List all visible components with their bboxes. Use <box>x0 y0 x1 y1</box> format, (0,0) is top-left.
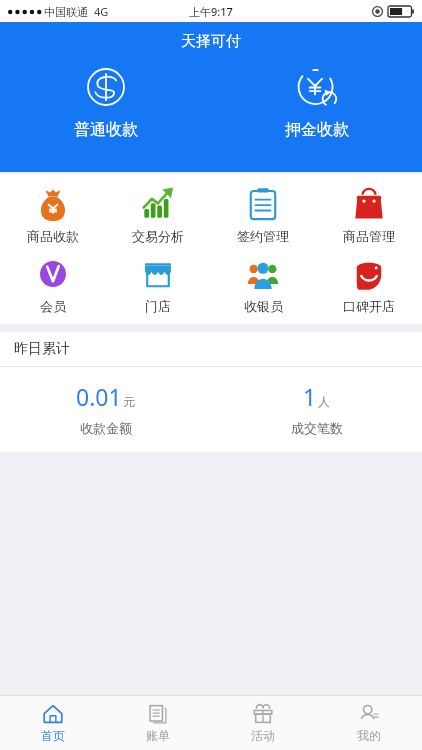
button[interactable]: 收银员 <box>210 250 316 320</box>
staticText: 签约管理 <box>237 228 289 244</box>
staticText: 天择可付 <box>181 32 241 51</box>
staticText: 收款金额 <box>80 420 132 436</box>
button[interactable]: 交易分析 <box>105 180 210 250</box>
staticText: 普通收款 <box>74 120 138 140</box>
staticText: 中国联通 <box>44 5 88 19</box>
staticText: 收银员 <box>244 298 283 314</box>
staticText: 0.01 <box>76 381 122 412</box>
staticText: 账单 <box>146 728 170 743</box>
staticText: 交易分析 <box>132 228 184 244</box>
staticText: 首页 <box>41 728 65 743</box>
staticText: 商品收款 <box>27 228 79 244</box>
button[interactable]: 商品管理 <box>316 180 422 250</box>
button[interactable]: 签约管理 <box>210 180 316 250</box>
button[interactable]: 会员 <box>0 250 105 320</box>
staticText: 成交笔数 <box>291 420 343 436</box>
staticText: 我的 <box>357 728 381 743</box>
button[interactable]: 押金收款 <box>211 64 422 142</box>
staticText: 元 <box>123 394 135 409</box>
staticText: 4G <box>94 4 109 19</box>
staticText: 昨日累计 <box>14 340 70 358</box>
button[interactable]: 活动 <box>210 696 316 750</box>
button[interactable]: 普通收款 <box>0 64 211 142</box>
button[interactable]: 商品收款 <box>0 180 105 250</box>
staticText: 口碑开店 <box>343 298 395 314</box>
button[interactable]: 1 <box>211 381 422 436</box>
staticText: 人 <box>318 394 330 409</box>
staticText: 活动 <box>251 728 275 743</box>
staticText: 门店 <box>145 298 171 314</box>
button[interactable]: 口碑开店 <box>316 250 422 320</box>
button[interactable]: 首页 <box>0 696 105 750</box>
staticText: 上午9:17 <box>189 4 233 19</box>
button[interactable]: 门店 <box>105 250 210 320</box>
button[interactable]: 我的 <box>316 696 422 750</box>
other: 押金收款 <box>297 67 337 107</box>
staticText: 会员 <box>40 298 66 314</box>
staticText: 1 <box>303 381 317 412</box>
staticText: 商品管理 <box>343 228 395 244</box>
button[interactable]: 账单 <box>105 696 210 750</box>
button[interactable]: 0.01 <box>0 381 211 436</box>
other: 普通收款 <box>86 67 126 107</box>
staticText: 押金收款 <box>285 120 349 140</box>
